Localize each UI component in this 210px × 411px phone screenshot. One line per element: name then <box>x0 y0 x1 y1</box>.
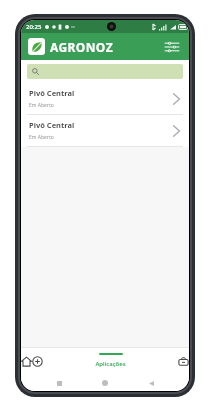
button[interactable]: Voltar <box>143 375 159 391</box>
button[interactable] <box>27 64 183 79</box>
staticText: Em Aberto <box>29 102 54 109</box>
button[interactable]: Pedidos <box>178 348 189 374</box>
staticText: Pivô Central <box>29 88 75 98</box>
button[interactable]: Início <box>21 348 32 374</box>
staticText: Em Aberto <box>29 134 54 141</box>
button[interactable]: Pivô Central <box>21 83 189 114</box>
staticText: 20:25 <box>26 23 42 31</box>
button[interactable]: Filtros <box>162 37 182 57</box>
button[interactable]: Aplicações <box>43 348 178 374</box>
button[interactable] <box>28 38 45 55</box>
button[interactable]: Pivô Central <box>21 115 189 146</box>
button[interactable]: Adicionar <box>32 348 43 374</box>
staticText: AGRONOZ <box>50 39 113 55</box>
staticText: Pivô Central <box>29 120 75 130</box>
button[interactable]: Início <box>97 375 113 391</box>
staticText: Aplicações <box>95 360 126 368</box>
button[interactable]: Recentes <box>51 375 67 391</box>
